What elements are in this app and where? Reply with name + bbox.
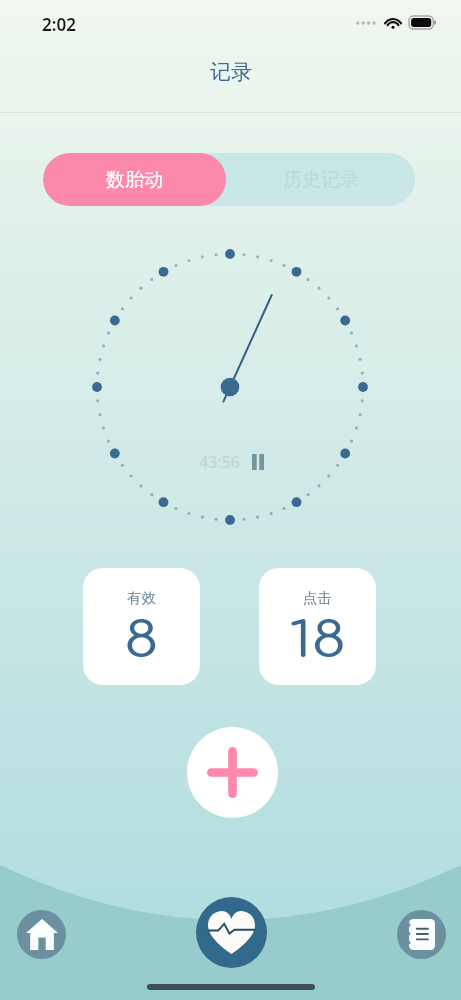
button[interactable]: Home	[17, 910, 66, 959]
staticText: 有效	[127, 589, 156, 607]
button[interactable]: 有效	[83, 568, 200, 685]
button[interactable]: Add record	[187, 727, 278, 818]
staticText: 18	[289, 614, 347, 669]
staticText: 8	[124, 614, 160, 669]
button[interactable]: 点击	[259, 568, 376, 685]
button[interactable]: 数胎动	[43, 153, 226, 206]
button[interactable]: Fetal movement record	[196, 897, 267, 968]
staticText: 43:56	[199, 451, 240, 473]
staticText: 历史记录	[283, 168, 359, 192]
staticText: 点击	[303, 589, 332, 607]
staticText: 2:02	[42, 13, 76, 36]
staticText: 记录	[210, 59, 252, 85]
staticText: 数胎动	[106, 168, 163, 192]
button[interactable]: 历史记录	[226, 153, 415, 206]
button[interactable]: Notes	[397, 910, 446, 959]
